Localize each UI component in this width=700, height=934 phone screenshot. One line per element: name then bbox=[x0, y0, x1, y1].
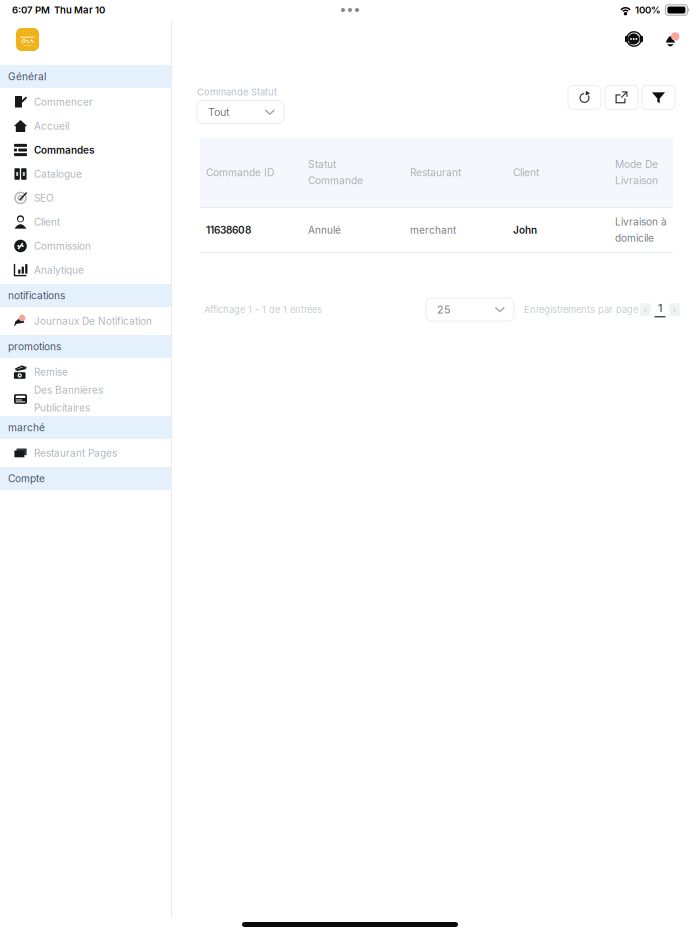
button[interactable]: Remise bbox=[0, 360, 171, 384]
staticText: Tout bbox=[208, 106, 229, 119]
staticText: Restaurant bbox=[410, 166, 461, 179]
staticText: Affichage 1 - 1 de 1 entrées bbox=[204, 304, 322, 315]
button[interactable]: Export bbox=[605, 85, 638, 109]
staticText: SEO bbox=[34, 192, 54, 204]
staticText: 11638608 bbox=[206, 224, 251, 236]
staticText: Annulé bbox=[308, 224, 341, 236]
staticText: Commande bbox=[308, 174, 363, 187]
button[interactable]: Restaurant Pages bbox=[0, 441, 171, 465]
button[interactable]: Client bbox=[0, 210, 171, 234]
staticText: John bbox=[513, 224, 537, 236]
button[interactable]: Des Bannières bbox=[0, 384, 171, 414]
staticText: Commande ID bbox=[206, 166, 274, 179]
staticText: Journaux De Notification bbox=[34, 315, 152, 327]
button[interactable]: Analytique bbox=[0, 258, 171, 282]
staticText: Publicitaires bbox=[34, 402, 90, 414]
staticText: 100% bbox=[635, 4, 661, 16]
staticText: Commande Statut bbox=[197, 86, 277, 98]
staticText: domicile bbox=[615, 232, 654, 244]
button[interactable]: Previous page bbox=[640, 303, 651, 316]
staticText: Enregistrements par page bbox=[524, 304, 638, 315]
staticText: Livraison à bbox=[615, 216, 667, 228]
staticText: notifications bbox=[8, 289, 65, 302]
button[interactable]: SEO bbox=[0, 186, 171, 210]
staticText: Client bbox=[34, 216, 60, 228]
button[interactable]: 11638608 bbox=[200, 208, 673, 252]
staticText: Mode De bbox=[615, 158, 658, 170]
staticText: 25 bbox=[437, 303, 450, 316]
staticText: 6:07 PM bbox=[12, 4, 50, 16]
button[interactable]: Support chat bbox=[625, 30, 643, 48]
button[interactable]: App logo bbox=[16, 28, 39, 51]
staticText: Statut bbox=[308, 158, 336, 170]
button[interactable]: Journaux De Notification bbox=[0, 309, 171, 333]
button[interactable]: Commission bbox=[0, 234, 171, 258]
staticText: › bbox=[672, 304, 676, 315]
staticText: 1 bbox=[658, 302, 662, 314]
button[interactable]: 1 bbox=[654, 301, 666, 318]
staticText: ‹ bbox=[643, 304, 647, 315]
button[interactable]: 25 bbox=[426, 298, 514, 321]
staticText: promotions bbox=[8, 340, 61, 353]
staticText: marché bbox=[8, 421, 45, 434]
staticText: Compte bbox=[8, 472, 45, 485]
button[interactable]: Catalogue bbox=[0, 162, 171, 186]
staticText: Thu Mar 10 bbox=[54, 4, 105, 16]
button[interactable]: Filter bbox=[642, 85, 675, 109]
staticText: Client bbox=[513, 166, 539, 179]
staticText: Commencer bbox=[34, 96, 93, 108]
staticText: Restaurant Pages bbox=[34, 447, 117, 459]
staticText: Remise bbox=[34, 366, 68, 378]
staticText: Accueil bbox=[34, 120, 69, 132]
button[interactable]: Refresh bbox=[568, 85, 601, 109]
button[interactable]: Accueil bbox=[0, 114, 171, 138]
staticText: Livraison bbox=[615, 174, 658, 187]
staticText: Catalogue bbox=[34, 168, 82, 180]
button[interactable]: Commandes bbox=[0, 138, 171, 162]
staticText: Des Bannières bbox=[34, 384, 103, 396]
staticText: Commission bbox=[34, 240, 91, 252]
staticText: Commandes bbox=[34, 144, 94, 156]
staticText: merchant bbox=[410, 224, 456, 236]
button[interactable]: Commencer bbox=[0, 90, 171, 114]
button[interactable]: Notifications bbox=[663, 30, 681, 48]
staticText: Général bbox=[8, 70, 46, 83]
button[interactable]: Next page bbox=[669, 303, 680, 316]
staticText: Analytique bbox=[34, 264, 84, 276]
button[interactable]: Tout bbox=[197, 101, 284, 124]
